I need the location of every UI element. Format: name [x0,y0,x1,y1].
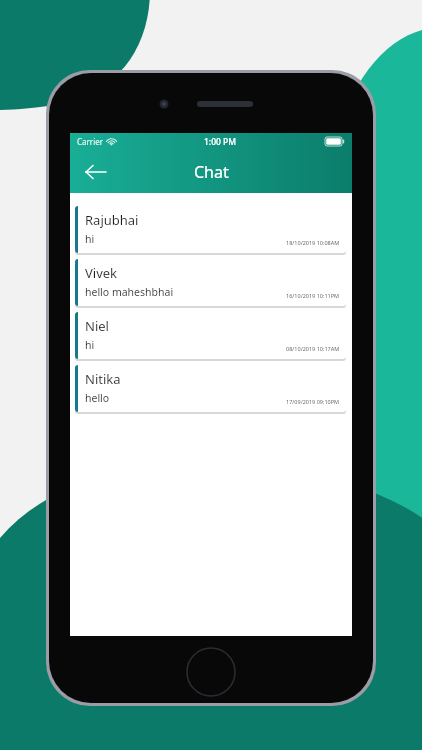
staticText: 18/10/2019 10:08AM [286,239,340,246]
button[interactable]: Back [74,150,118,193]
button[interactable]: Vivek [75,259,346,308]
staticText: Nitika [85,370,121,388]
staticText: Rajubhai [85,211,139,229]
staticText: Chat [194,161,229,183]
button[interactable]: Nitika [75,365,346,414]
staticText: Vivek [85,264,118,282]
staticText: 16/10/2019 10:11PM [286,292,340,299]
staticText: hi [85,338,95,352]
staticText: 1:00 PM [204,136,237,148]
staticText: Niel [85,317,109,335]
staticText: hi [85,232,95,246]
staticText: Carrier [77,136,104,147]
staticText: 17/09/2019 09:10PM [286,398,340,405]
staticText: hello maheshbhai [85,285,174,299]
button[interactable]: Niel [75,312,346,361]
button[interactable]: Rajubhai [75,206,346,255]
staticText: 08/10/2019 10:17AM [286,345,340,352]
staticText: hello [85,391,110,405]
